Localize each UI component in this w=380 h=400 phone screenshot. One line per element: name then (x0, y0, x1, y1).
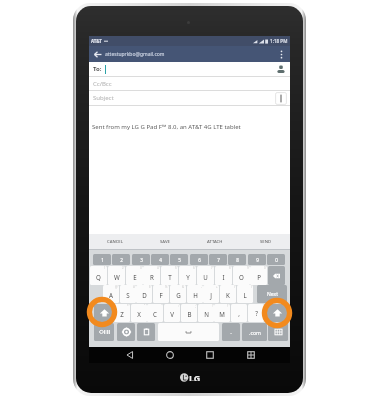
button[interactable]: 0 (267, 254, 285, 265)
button[interactable]: @ (103, 285, 119, 303)
button[interactable]: Recent apps (202, 347, 218, 363)
button[interactable]: Settings (117, 323, 135, 341)
staticText: 1 (101, 257, 104, 263)
button[interactable]: Backspace (268, 266, 285, 285)
staticText: Q (96, 273, 101, 281)
staticText: ? (255, 309, 258, 317)
button[interactable]: ! (198, 304, 214, 322)
staticText: 9 (256, 257, 259, 263)
button[interactable]: Shift (94, 304, 114, 322)
button[interactable]: CANCEL (89, 234, 140, 250)
staticText: $ (149, 285, 151, 289)
staticText: S (126, 291, 130, 299)
button[interactable]: 7 (209, 254, 227, 265)
button[interactable]: Home (162, 347, 178, 363)
staticText: * (127, 304, 129, 308)
button[interactable]: % (153, 285, 169, 303)
staticText: T (168, 273, 172, 281)
button[interactable]: + (203, 285, 219, 303)
button[interactable]: SEND (240, 234, 290, 250)
staticText: C (153, 310, 157, 318)
button[interactable]: All apps (243, 347, 259, 363)
staticText: 1 (104, 266, 106, 270)
button[interactable]: ( (220, 285, 236, 303)
button[interactable]: 7 (197, 266, 214, 285)
button[interactable]: Switch keyboard (268, 323, 288, 341)
staticText: R (150, 273, 154, 281)
staticText: ' (161, 304, 162, 308)
button[interactable]: ? (248, 304, 264, 322)
button[interactable]: , (231, 304, 247, 322)
button[interactable]: ; (181, 304, 197, 322)
staticText: I (222, 273, 225, 281)
button[interactable]: ? (214, 304, 230, 322)
button[interactable]: 0 (250, 266, 267, 285)
staticText: E (133, 273, 137, 281)
staticText: & (182, 285, 185, 289)
button[interactable]: Symbols (94, 323, 114, 341)
button[interactable]: - (187, 285, 203, 303)
button[interactable]: 4 (143, 266, 160, 285)
button[interactable]: ) (237, 285, 253, 303)
staticText: % (165, 285, 168, 289)
button[interactable]: 6 (190, 254, 208, 265)
staticText: X (137, 310, 141, 318)
staticText: 3 (140, 257, 143, 263)
staticText: W (114, 273, 120, 281)
button[interactable]: Next (257, 285, 287, 303)
staticText: L (243, 291, 247, 299)
staticText: SAVE (160, 239, 170, 245)
staticText: , (238, 309, 240, 317)
button[interactable]: 3 (126, 266, 143, 285)
staticText: LG (189, 372, 201, 381)
button[interactable]: Clipboard (137, 323, 155, 341)
button[interactable]: SAVE (140, 234, 190, 250)
button[interactable]: ATTACH (190, 234, 240, 250)
staticText: 2 (120, 257, 123, 263)
button[interactable]: .com (242, 323, 267, 341)
staticText: U (203, 273, 208, 281)
staticText: @ (115, 285, 118, 289)
button[interactable]: ' (147, 304, 163, 322)
staticText: Next (267, 291, 278, 298)
button[interactable]: 2 (112, 254, 130, 265)
staticText: V (170, 310, 174, 318)
button[interactable]: 1 (93, 254, 111, 265)
button[interactable]: 2 (108, 266, 125, 285)
button[interactable]: More options (275, 48, 287, 60)
button[interactable]: 8 (228, 254, 246, 265)
button[interactable]: . (222, 323, 240, 341)
button[interactable]: : (164, 304, 180, 322)
staticText: 0 (264, 266, 266, 270)
button[interactable]: Back (122, 347, 138, 363)
button[interactable]: 9 (233, 266, 250, 285)
staticText: ( (234, 285, 235, 289)
button[interactable]: & (170, 285, 186, 303)
button[interactable]: 6 (179, 266, 196, 285)
button[interactable]: 8 (215, 266, 232, 285)
button[interactable]: Navigate up (92, 48, 104, 60)
staticText: 9 (247, 266, 249, 270)
staticText: AT&T (91, 38, 102, 44)
staticText: 5 (178, 257, 181, 263)
button[interactable]: 9 (248, 254, 266, 265)
staticText: Subject (93, 94, 114, 102)
button[interactable]: # (120, 285, 136, 303)
button[interactable]: * (114, 304, 130, 322)
button[interactable]: Pick contact (275, 63, 287, 75)
staticText: SEND (260, 239, 271, 245)
button[interactable]: 4 (151, 254, 169, 265)
button[interactable]: 1 (90, 266, 107, 285)
button[interactable]: Space (158, 323, 219, 341)
button[interactable]: " (131, 304, 147, 322)
staticText: 6 (198, 257, 201, 263)
button[interactable]: 5 (170, 254, 188, 265)
staticText: 1:18 PM (270, 38, 288, 44)
staticText: Y (186, 273, 190, 281)
button[interactable]: $ (136, 285, 152, 303)
button[interactable]: Shift (267, 304, 287, 322)
button[interactable]: 5 (161, 266, 178, 285)
button[interactable]: Priority (275, 92, 287, 105)
button[interactable]: 3 (132, 254, 150, 265)
staticText: ATTACH (207, 239, 223, 245)
